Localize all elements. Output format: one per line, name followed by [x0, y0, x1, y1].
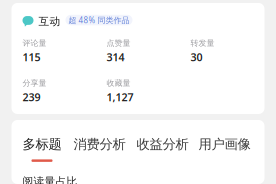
staticText: 分享量 [22, 78, 46, 88]
staticText: 转发量 [190, 38, 214, 48]
staticText: 314 [106, 50, 124, 64]
staticText: 超 48% 同类作品 [68, 15, 129, 25]
button[interactable]: 消费分析 [73, 136, 125, 162]
staticText: 点赞量 [106, 38, 130, 48]
staticText: 1,127 [106, 90, 133, 104]
staticText: 30 [190, 50, 202, 64]
staticText: 239 [22, 90, 40, 104]
button[interactable]: 收益分析 [136, 136, 188, 162]
staticText: 阅读量占比 [22, 175, 77, 184]
staticText: 多标题 [22, 136, 61, 152]
staticText: 消费分析 [73, 136, 125, 152]
staticText: 评论量 [22, 38, 46, 48]
staticText: 收益分析 [136, 136, 188, 152]
staticText: 115 [22, 50, 40, 64]
button[interactable]: 多标题 [22, 136, 61, 162]
button[interactable]: 用户画像 [198, 136, 250, 162]
staticText: 用户画像 [198, 136, 250, 152]
staticText: 互动 [38, 15, 60, 28]
staticText: 收藏量 [106, 78, 130, 88]
